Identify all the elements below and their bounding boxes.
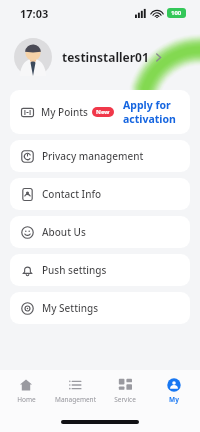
staticText: Management bbox=[55, 395, 96, 404]
button[interactable]: Management bbox=[52, 370, 98, 412]
staticText: My Points bbox=[41, 105, 88, 119]
staticText: Privacy management bbox=[42, 149, 144, 163]
staticText: Contact Info bbox=[42, 187, 102, 201]
button[interactable]: Push settings bbox=[10, 254, 190, 286]
button[interactable]: Home bbox=[3, 370, 49, 412]
button[interactable]: My Settings bbox=[10, 292, 190, 324]
button[interactable]: About Us bbox=[10, 216, 190, 248]
staticText: Service bbox=[114, 395, 136, 404]
button[interactable]: My Points bbox=[10, 90, 190, 134]
button[interactable]: Service bbox=[102, 370, 148, 412]
staticText: Push settings bbox=[42, 263, 107, 277]
staticText: Home bbox=[17, 395, 36, 404]
staticText: 100 bbox=[171, 9, 182, 17]
button[interactable]: Apply for activation bbox=[123, 98, 179, 126]
staticText: New bbox=[96, 108, 110, 116]
button[interactable]: Privacy management bbox=[10, 140, 190, 172]
staticText: My bbox=[169, 395, 179, 404]
staticText: About Us bbox=[42, 225, 86, 239]
staticText: My Settings bbox=[42, 301, 98, 315]
button[interactable]: Contact Info bbox=[10, 178, 190, 210]
button[interactable]: My bbox=[151, 370, 197, 412]
button[interactable]: testinstaller01 bbox=[0, 34, 200, 80]
staticText: 17:03 bbox=[20, 6, 49, 21]
staticText: testinstaller01 bbox=[62, 49, 149, 65]
